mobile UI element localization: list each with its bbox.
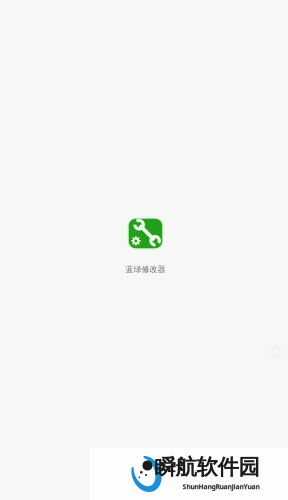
staticText: ShunHangRuanJianYuan <box>182 482 259 491</box>
staticText: 蓝绿修改器 <box>125 264 165 274</box>
staticText: 瞬航软件园 <box>154 454 259 480</box>
button[interactable]: 蓝绿修改器 <box>125 216 165 274</box>
